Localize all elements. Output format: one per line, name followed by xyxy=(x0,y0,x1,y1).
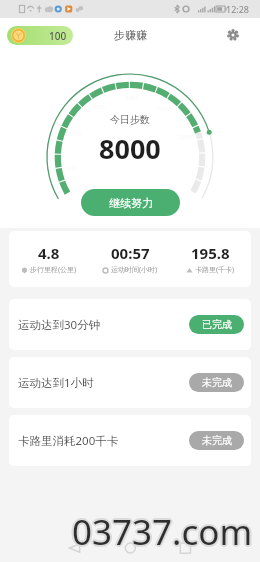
staticText: 12:28 xyxy=(226,3,250,15)
staticText: 00:57 xyxy=(111,243,150,263)
button[interactable]: Settings xyxy=(222,24,244,46)
staticText: 继续努力 xyxy=(109,196,153,210)
staticText: 03737.com xyxy=(71,507,252,555)
staticText: 今日步数 xyxy=(110,113,150,126)
button[interactable]: 卡路里消耗200千卡 xyxy=(9,415,251,466)
button[interactable]: 运动达到30分钟 xyxy=(9,299,251,350)
button[interactable]: 继续努力 xyxy=(81,189,180,216)
staticText: 8000 xyxy=(99,130,161,167)
staticText: 卡路里(千卡) xyxy=(195,265,235,275)
staticText: 已完成 xyxy=(202,318,232,331)
staticText: 03737.com xyxy=(72,508,253,556)
staticText: 03737.com xyxy=(72,510,253,558)
staticText: 4.8 xyxy=(38,243,60,263)
staticText: 03737.com xyxy=(70,508,251,556)
staticText: 03737.com xyxy=(72,506,253,554)
button[interactable]: 100 xyxy=(7,26,73,45)
staticText: 运动达到1小时 xyxy=(18,375,94,391)
staticText: 4000 xyxy=(66,129,84,137)
staticText: 03737.com xyxy=(71,509,252,557)
staticText: 卡路里消耗200千卡 xyxy=(18,433,119,449)
staticText: 03737.com xyxy=(74,508,255,556)
staticText: 运动达到30分钟 xyxy=(18,317,101,333)
staticText: 195.8 xyxy=(191,243,230,263)
button[interactable]: 运动达到1小时 xyxy=(9,357,251,408)
staticText: 未完成 xyxy=(202,376,232,389)
staticText: 运动时间(小时) xyxy=(111,265,158,275)
staticText: 2000 xyxy=(62,164,80,172)
staticText: 03737.com xyxy=(73,507,254,555)
staticText: 100 xyxy=(49,29,67,43)
staticText: 步行里程(公里) xyxy=(30,265,77,275)
staticText: 步赚赚 xyxy=(114,28,147,42)
staticText: 03737.com xyxy=(73,509,254,557)
staticText: 未完成 xyxy=(202,434,232,447)
